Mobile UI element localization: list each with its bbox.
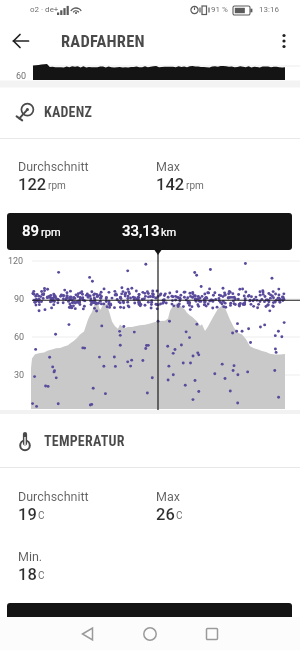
button[interactable]: Back xyxy=(68,618,108,650)
staticText: 33,13 xyxy=(122,222,160,240)
staticText: Max xyxy=(156,159,180,174)
staticText: TEMPERATUR xyxy=(44,433,125,449)
staticText: 30 xyxy=(14,370,25,381)
staticText: rpm xyxy=(48,180,66,192)
staticText: rpm xyxy=(186,180,204,192)
staticText: 142 xyxy=(156,175,185,194)
staticText: 13:16 xyxy=(259,5,279,14)
staticText: RADFAHREN xyxy=(61,32,145,51)
staticText: 90 xyxy=(14,294,25,305)
staticText: C xyxy=(176,510,183,522)
button[interactable]: Back xyxy=(7,27,35,55)
staticText: C xyxy=(38,570,45,582)
staticText: o2 · de+ xyxy=(30,5,59,14)
button[interactable]: TEMPERATUR xyxy=(0,424,300,468)
button[interactable]: Home xyxy=(130,618,170,650)
staticText: Min. xyxy=(18,549,43,564)
staticText: Durchschnitt xyxy=(18,489,89,504)
button[interactable]: Recents xyxy=(192,618,232,650)
staticText: 91 % xyxy=(211,5,228,14)
staticText: 122 xyxy=(18,175,47,194)
button[interactable]: KADENZ xyxy=(0,95,300,139)
staticText: 60 xyxy=(14,332,25,343)
button[interactable]: More options xyxy=(272,27,300,55)
button[interactable] xyxy=(7,603,292,619)
staticText: 120 xyxy=(8,256,24,267)
staticText: 18 xyxy=(18,565,37,584)
staticText: Durchschnitt xyxy=(18,159,89,174)
staticText: km xyxy=(161,226,177,239)
staticText: 89 xyxy=(22,222,40,240)
staticText: KADENZ xyxy=(44,104,93,120)
staticText: 19 xyxy=(18,505,37,524)
staticText: rpm xyxy=(41,226,61,239)
staticText: C xyxy=(38,510,45,522)
button[interactable] xyxy=(7,213,292,250)
staticText: Max xyxy=(156,489,180,504)
staticText: 60 xyxy=(16,71,27,82)
staticText: 26 xyxy=(156,505,175,524)
